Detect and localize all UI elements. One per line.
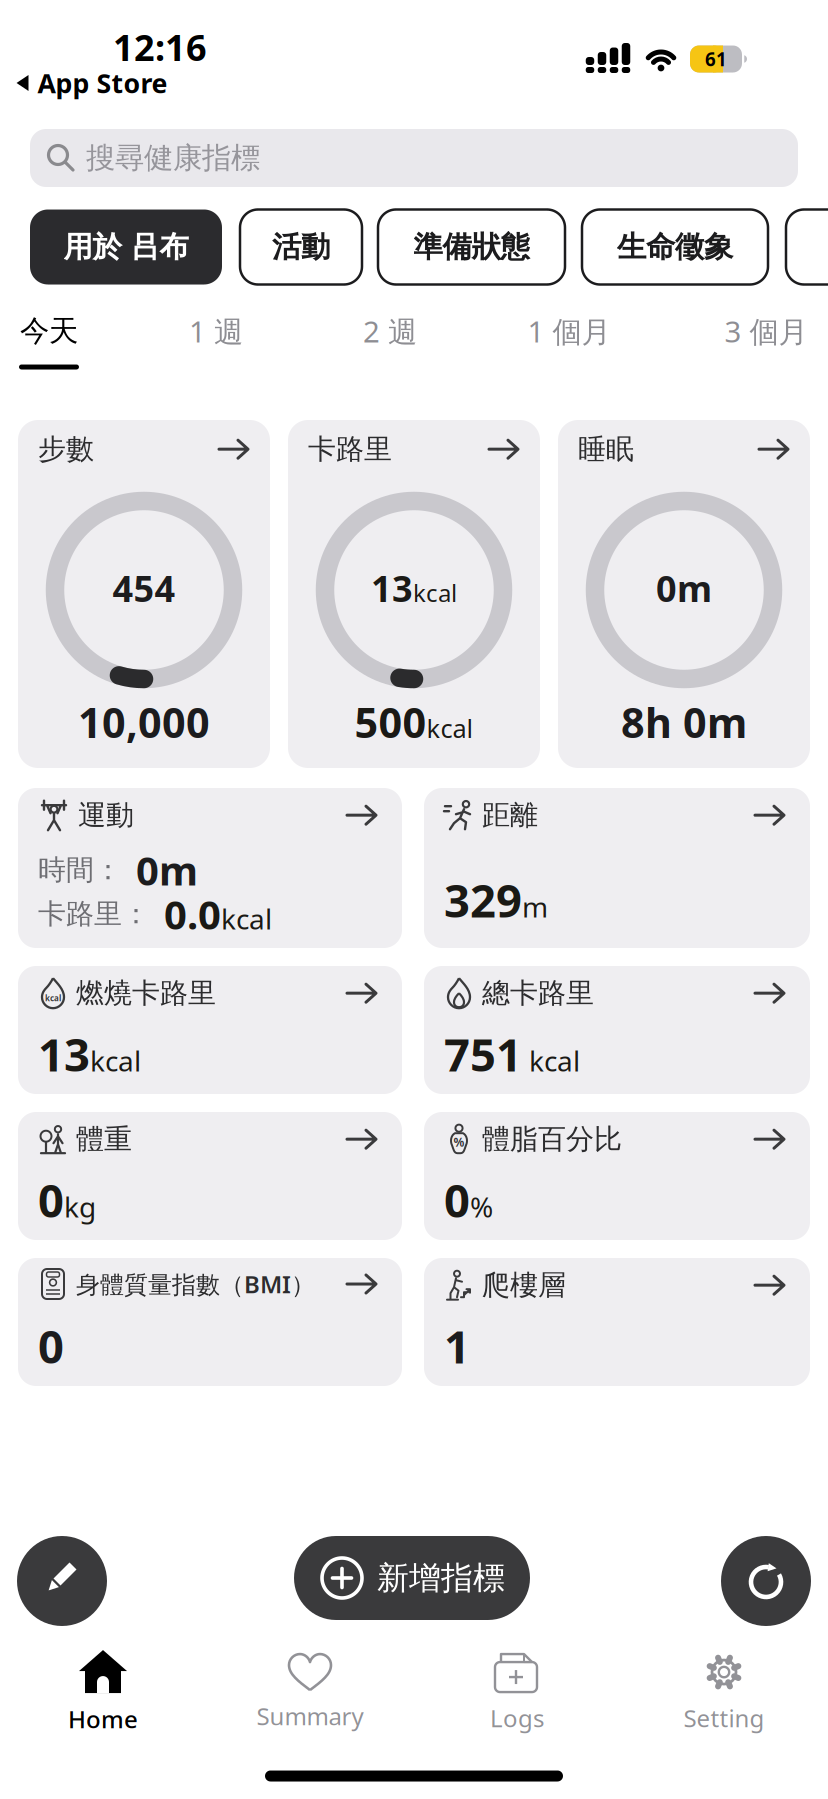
- staticText: 距離: [482, 798, 538, 832]
- button[interactable]: 1 週: [177, 301, 255, 360]
- button[interactable]: 搜尋健康指標: [30, 129, 798, 187]
- staticText: 體脂百分比: [482, 1122, 622, 1156]
- staticText: 1 個月: [527, 311, 610, 350]
- staticText: 61: [705, 47, 727, 71]
- button[interactable]: 身體質量指數（BMI）: [18, 1258, 402, 1386]
- button[interactable]: 用於 吕布: [30, 209, 222, 284]
- staticText: 運動: [78, 798, 134, 832]
- button[interactable]: Logs: [414, 1639, 620, 1745]
- button[interactable]: 步數: [18, 420, 270, 768]
- staticText: 身體質量指數（BMI）: [76, 1268, 315, 1300]
- staticText: 1: [444, 1316, 470, 1376]
- staticText: 454: [112, 564, 175, 612]
- staticText: 燃燒卡路里: [76, 976, 216, 1010]
- button[interactable]: 爬樓層: [424, 1258, 810, 1386]
- staticText: 0m: [656, 564, 712, 612]
- button[interactable]: 體重: [18, 1112, 402, 1240]
- staticText: 搜尋健康指標: [86, 140, 260, 176]
- button[interactable]: 2 週: [351, 301, 429, 360]
- staticText: 活動: [272, 229, 330, 265]
- staticText: Summary: [256, 1700, 363, 1732]
- staticText: Home: [68, 1703, 138, 1735]
- button[interactable]: Summary: [207, 1639, 413, 1745]
- button[interactable]: 運動: [18, 788, 402, 948]
- button[interactable]: 生命徵象: [582, 209, 768, 284]
- button[interactable]: Refresh: [721, 1536, 811, 1626]
- staticText: 總卡路里: [482, 976, 594, 1010]
- staticText: 體重: [76, 1122, 132, 1156]
- staticText: 329m: [444, 870, 548, 930]
- staticText: 3 個月: [724, 311, 807, 350]
- button[interactable]: More filters: [786, 209, 828, 284]
- button[interactable]: Home: [0, 1639, 206, 1745]
- staticText: 0m: [136, 843, 198, 896]
- staticText: 0: [38, 1316, 64, 1376]
- staticText: 準備狀態: [413, 229, 529, 265]
- staticText: 爬樓層: [482, 1268, 566, 1302]
- staticText: 步數: [38, 432, 94, 466]
- button[interactable]: 今天: [8, 303, 90, 359]
- staticText: 今天: [20, 313, 78, 349]
- staticText: %: [453, 1134, 464, 1150]
- button[interactable]: 3 個月: [712, 301, 819, 360]
- staticText: 751 kcal: [444, 1024, 580, 1084]
- staticText: 生命徵象: [617, 229, 733, 265]
- staticText: 卡路里: [308, 432, 392, 466]
- button[interactable]: kcal: [18, 966, 402, 1094]
- staticText: 12:16: [113, 23, 207, 71]
- staticText: 用於 吕布: [63, 229, 188, 265]
- button[interactable]: 總卡路里: [424, 966, 810, 1094]
- staticText: 2 週: [363, 311, 417, 350]
- staticText: Setting: [683, 1702, 764, 1734]
- button[interactable]: Edit: [17, 1536, 107, 1626]
- button[interactable]: 距離: [424, 788, 810, 948]
- staticText: 1 週: [189, 311, 243, 350]
- button[interactable]: 1 個月: [515, 301, 622, 360]
- button[interactable]: 卡路里: [288, 420, 540, 768]
- staticText: Logs: [490, 1702, 544, 1734]
- button[interactable]: %: [424, 1112, 810, 1240]
- staticText: 13kcal: [38, 1024, 141, 1084]
- staticText: kcal: [45, 993, 61, 1003]
- button[interactable]: 新增指標: [294, 1536, 530, 1620]
- button[interactable]: 活動: [240, 209, 362, 284]
- button[interactable]: Setting: [621, 1639, 827, 1745]
- button[interactable]: 睡眠: [558, 420, 810, 768]
- staticText: App Store: [37, 65, 167, 101]
- staticText: 13kcal: [371, 564, 457, 612]
- staticText: 睡眠: [578, 432, 634, 466]
- staticText: 時間：: [38, 853, 122, 887]
- staticText: 10,000: [78, 695, 210, 749]
- staticText: 0.0kcal: [164, 887, 272, 940]
- staticText: 8h 0m: [621, 695, 747, 749]
- staticText: 卡路里：: [38, 897, 150, 931]
- button[interactable]: 準備狀態: [378, 209, 565, 284]
- staticText: 500kcal: [354, 695, 473, 749]
- staticText: 0%: [444, 1170, 493, 1230]
- staticText: 0kg: [38, 1170, 96, 1230]
- button[interactable]: App Store: [16, 65, 167, 101]
- staticText: 新增指標: [377, 1558, 505, 1598]
